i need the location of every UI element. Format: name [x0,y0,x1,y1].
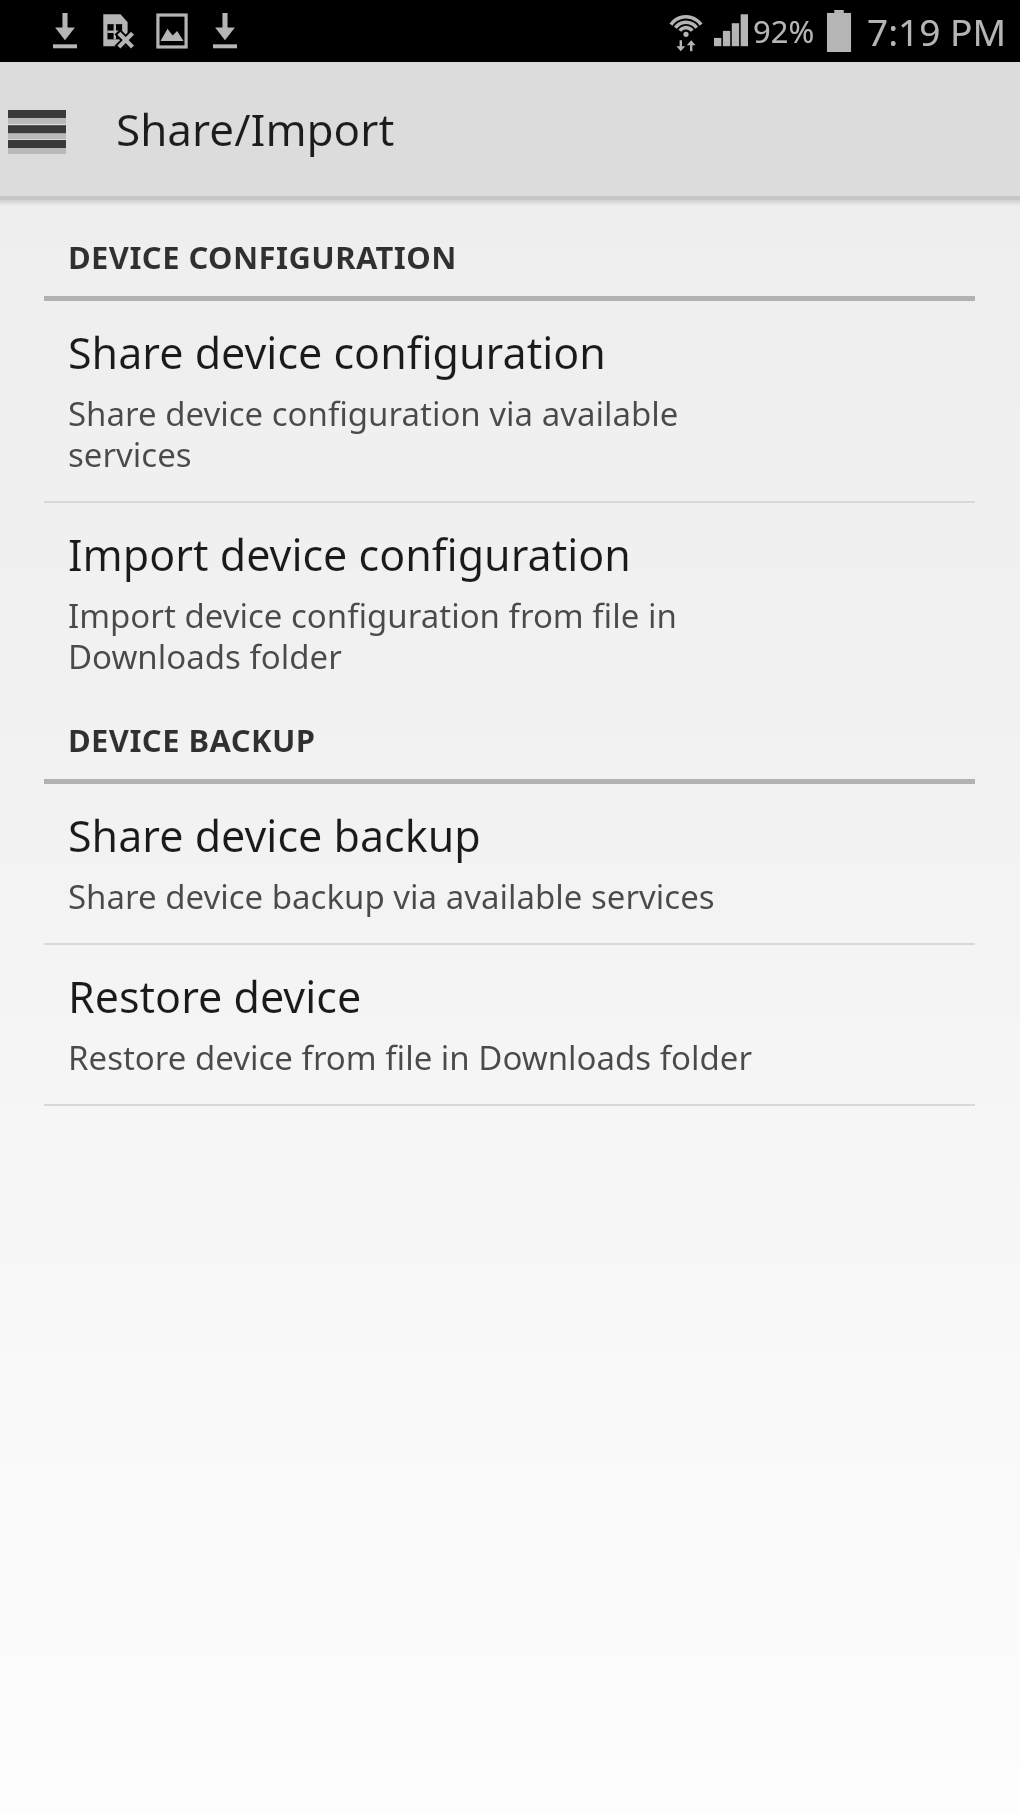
button[interactable]: Import device configuration [0,503,1020,703]
button[interactable]: Share device backup [0,784,1020,943]
staticText: 7:19 PM [867,6,1006,56]
button[interactable]: Open navigation drawer [2,94,72,164]
staticText: Share device configuration [68,323,606,382]
staticText: Restore device [68,967,362,1026]
staticText: Share device configuration via available… [68,391,679,477]
staticText: Share device backup via available servic… [68,874,715,919]
staticText: Share device backup [68,806,481,865]
staticText: 92% [753,10,815,52]
staticText: DEVICE BACKUP [68,719,316,761]
button[interactable]: Share device configuration [0,301,1020,501]
staticText: Import device configuration [68,525,631,584]
staticText: Import device configuration from file in… [68,593,677,679]
staticText: DEVICE CONFIGURATION [68,236,457,278]
staticText: Restore device from file in Downloads fo… [68,1035,753,1080]
staticText: Share/Import [116,99,395,159]
button[interactable]: Restore device [0,945,1020,1104]
